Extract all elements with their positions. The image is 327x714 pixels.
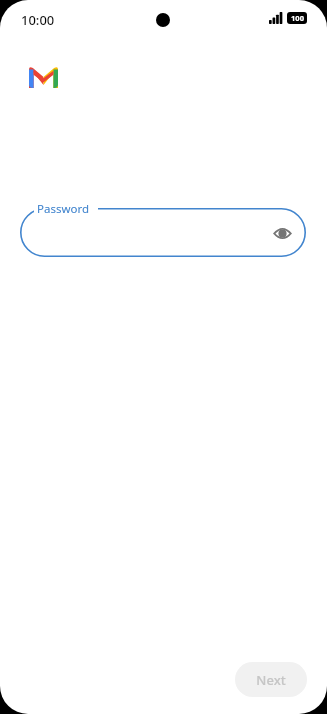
staticText: Next: [256, 671, 286, 689]
button[interactable]: Next: [235, 662, 307, 697]
staticText: Password: [37, 201, 90, 217]
button[interactable]: Show password: [20, 208, 306, 257]
staticText: 10:00: [21, 11, 55, 29]
staticText: 100: [291, 13, 304, 23]
button[interactable]: Show password: [266, 217, 298, 249]
